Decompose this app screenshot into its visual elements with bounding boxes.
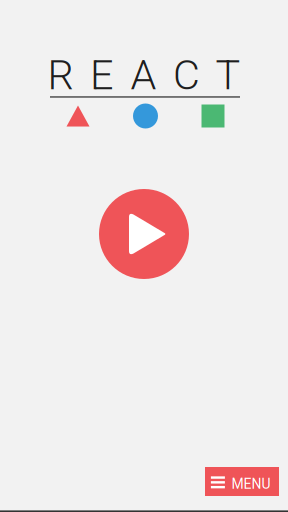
staticText: MENU bbox=[231, 476, 270, 492]
button[interactable]: Play bbox=[99, 189, 189, 279]
button[interactable]: MENU bbox=[205, 467, 279, 496]
staticText: REACT bbox=[47, 51, 240, 99]
